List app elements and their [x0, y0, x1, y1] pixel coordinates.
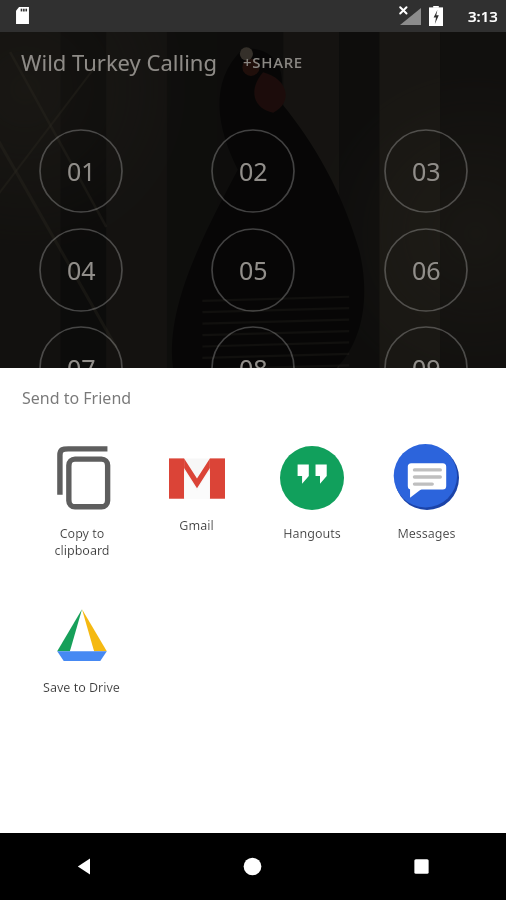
staticText: +SHARE	[243, 52, 303, 72]
button[interactable]: Save to Drive	[24, 600, 139, 696]
button[interactable]: 01	[40, 130, 122, 212]
staticText: Hangouts	[283, 525, 341, 542]
staticText: Wild Turkey Calling	[21, 47, 217, 77]
button[interactable]: 08	[212, 327, 294, 409]
button[interactable]: 02	[212, 130, 294, 212]
button[interactable]: +SHARE	[235, 45, 311, 79]
staticText: 07	[67, 351, 96, 385]
staticText: Save to Drive	[43, 679, 120, 696]
button[interactable]: 07	[40, 327, 122, 409]
staticText: 01	[67, 154, 96, 188]
button[interactable]: 09	[385, 327, 467, 409]
button[interactable]: 06	[385, 229, 467, 311]
button[interactable]: Gmail	[139, 444, 254, 534]
staticText: 08	[239, 351, 268, 385]
staticText: 05	[239, 253, 268, 287]
staticText: Copy to clipboard	[54, 525, 110, 558]
staticText: 09	[412, 351, 441, 385]
staticText: 02	[239, 154, 268, 188]
staticText: 03	[412, 154, 441, 188]
staticText: Gmail	[179, 517, 214, 534]
button[interactable]: Back	[0, 833, 168, 900]
button[interactable]: 04	[40, 229, 122, 311]
staticText: 04	[67, 253, 96, 287]
button[interactable]: Home	[168, 833, 337, 900]
staticText: 3:13	[468, 6, 498, 26]
button[interactable]: Recent apps	[337, 833, 506, 900]
button[interactable]: Messages	[369, 444, 484, 542]
staticText: 06	[412, 253, 441, 287]
button[interactable]: 03	[385, 130, 467, 212]
button[interactable]: 05	[212, 229, 294, 311]
staticText: Messages	[397, 525, 456, 542]
staticText: Send to Friend	[22, 387, 132, 409]
button[interactable]: Copy to clipboard	[24, 444, 139, 558]
button[interactable]: Hangouts	[254, 444, 369, 542]
